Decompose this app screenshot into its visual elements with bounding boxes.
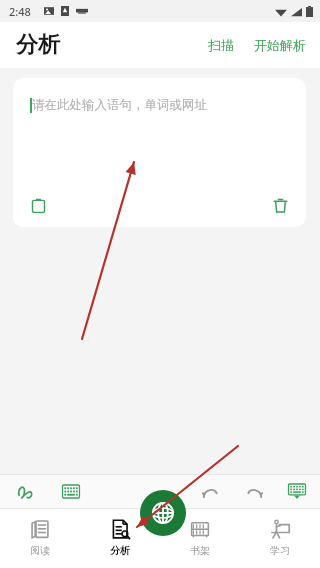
button[interactable]: Handwriting input	[10, 477, 39, 506]
staticText: 书架	[190, 544, 210, 557]
staticText: 阅读	[30, 544, 50, 557]
button[interactable]: Redo	[241, 480, 270, 504]
staticText: 分析	[110, 544, 130, 557]
button[interactable]: 开始解析	[244, 29, 320, 61]
staticText: 2:48	[9, 4, 31, 19]
button[interactable]: 阅读	[0, 509, 80, 568]
button[interactable]: 分析	[80, 509, 160, 568]
staticText: 分析	[16, 31, 60, 59]
staticText: 开始解析	[254, 37, 306, 53]
button[interactable]: Undo	[195, 480, 224, 504]
button[interactable]: Hide keyboard	[282, 478, 312, 505]
button[interactable]: Keyboard input	[56, 479, 86, 504]
staticText: 扫描	[208, 37, 234, 53]
button[interactable]: 书架	[160, 509, 240, 568]
staticText: 请在此处输入语句，单词或网址	[32, 97, 207, 113]
button[interactable]: Clear text	[265, 190, 296, 221]
button[interactable]: Paste from clipboard	[23, 190, 54, 221]
button[interactable]: 学习	[240, 509, 320, 568]
button[interactable]: 扫描	[198, 29, 244, 61]
staticText: 学习	[270, 544, 290, 557]
button[interactable]: Translate web page	[140, 490, 186, 536]
